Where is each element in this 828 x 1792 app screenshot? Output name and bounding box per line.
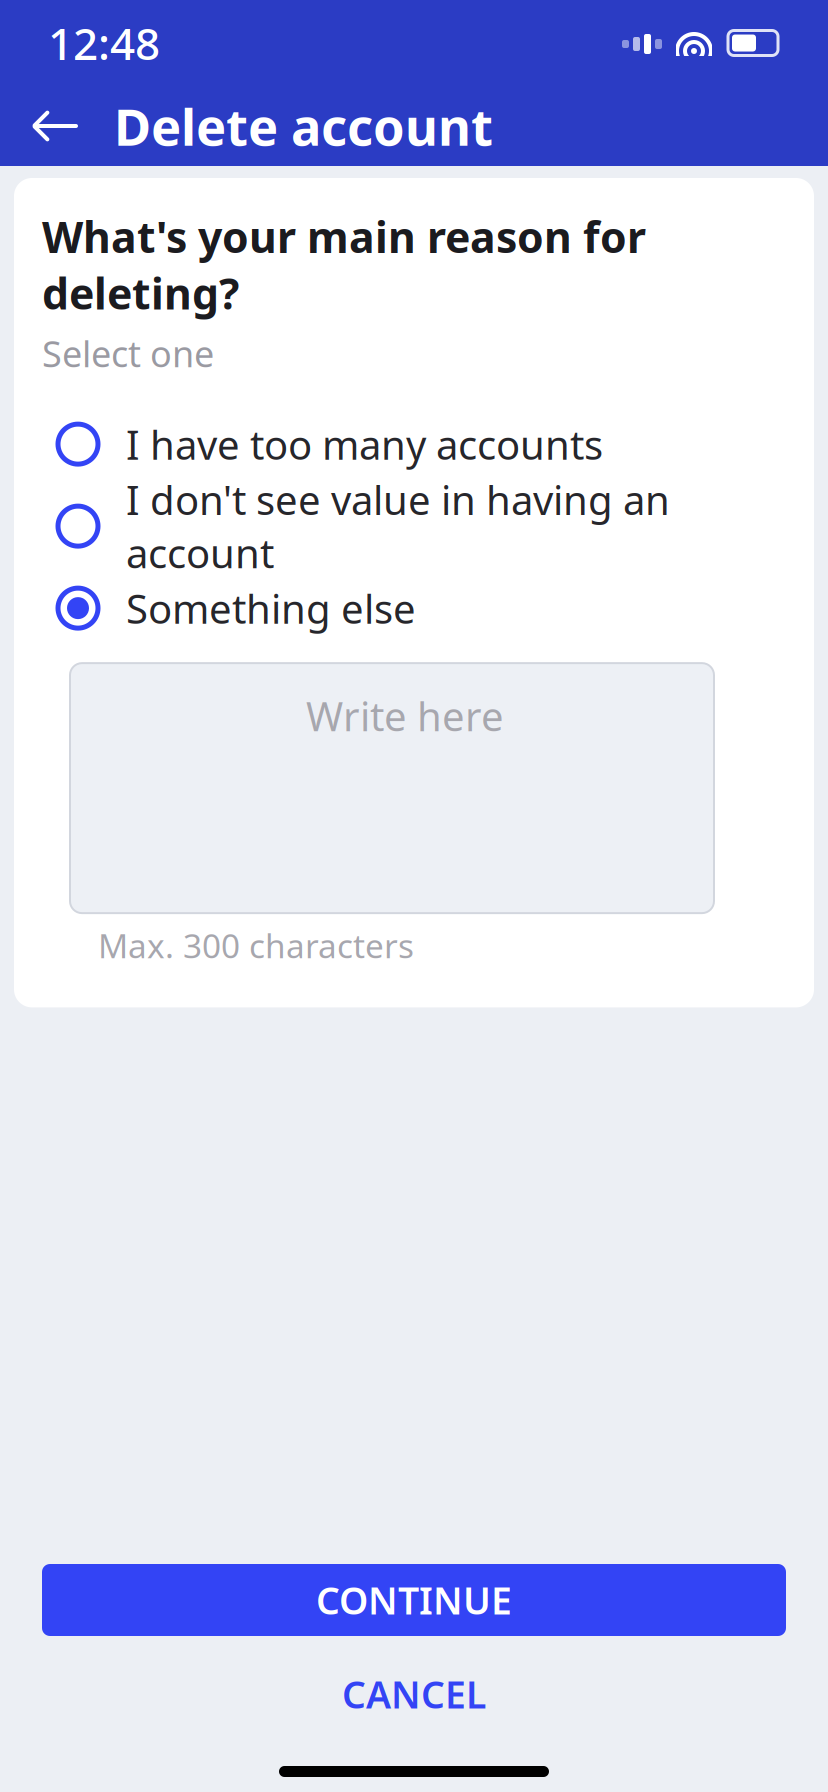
staticText: Something else [126,582,416,635]
button[interactable]: Something else [42,579,782,637]
staticText: 12:48 [48,14,160,72]
staticText: Max. 300 characters [98,923,414,967]
staticText: Select one [42,329,214,377]
staticText: CONTINUE [316,1575,512,1625]
staticText: CANCEL [342,1669,486,1719]
staticText: I don't see value in having an account [126,473,670,579]
button[interactable]: I have too many accounts [42,415,782,473]
staticText: Write here [306,689,504,742]
staticText: I have too many accounts [126,418,603,471]
button[interactable]: Back [16,86,96,166]
button[interactable]: CANCEL [42,1670,786,1718]
button[interactable]: CONTINUE [42,1564,786,1636]
staticText: Delete account [114,92,493,160]
staticText: What's your main reason for deleting? [42,208,646,321]
button[interactable]: I don't see value in having an account [42,497,782,555]
